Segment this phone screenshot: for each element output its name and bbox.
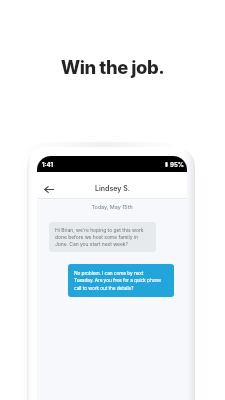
button[interactable]: Back	[41, 182, 57, 196]
staticText: Today, May 15th	[37, 204, 187, 211]
staticText: Lindsey S.	[95, 184, 130, 192]
button[interactable]: Hi Brian, we're hoping to get this work …	[49, 222, 156, 252]
staticText: 95%	[170, 161, 184, 168]
staticText: No problem. I can come by next Tuesday. …	[74, 270, 161, 291]
button[interactable]: No problem. I can come by next Tuesday. …	[68, 264, 174, 297]
staticText: Hi Brian, we're hoping to get this work …	[55, 227, 144, 247]
staticText: 1:41	[42, 161, 54, 168]
staticText: Win the job.	[0, 56, 225, 78]
